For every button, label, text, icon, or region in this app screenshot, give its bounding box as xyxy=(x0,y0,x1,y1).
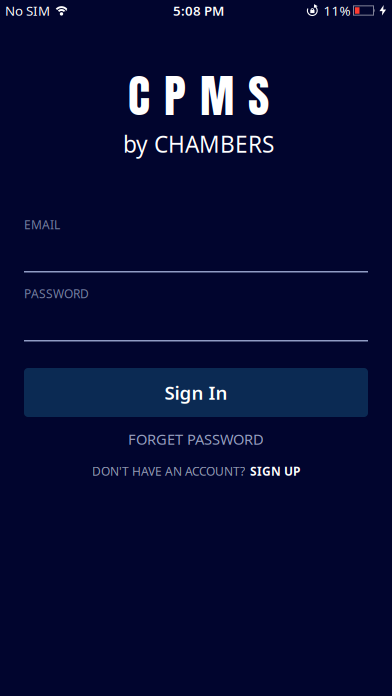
staticText: S xyxy=(248,61,269,130)
staticText: No SIM xyxy=(5,2,50,19)
staticText: by CHAMBERS xyxy=(123,129,274,159)
staticText: DON'T HAVE AN ACCOUNT? xyxy=(92,463,245,479)
button[interactable]: DON'T HAVE AN ACCOUNT? xyxy=(24,465,368,477)
staticText: EMAIL xyxy=(24,216,60,232)
staticText: SIGN UP xyxy=(250,463,300,479)
staticText: Sign In xyxy=(164,380,227,405)
staticText: PASSWORD xyxy=(24,285,89,301)
staticText: P xyxy=(164,61,186,130)
staticText: 11% xyxy=(323,2,350,19)
staticText: C xyxy=(128,61,150,130)
staticText: FORGET PASSWORD xyxy=(128,429,264,449)
staticText: 5:08 PM xyxy=(173,2,224,19)
button[interactable]: Sign In xyxy=(24,368,368,417)
staticText: M xyxy=(200,61,234,130)
button[interactable]: FORGET PASSWORD xyxy=(24,433,368,445)
